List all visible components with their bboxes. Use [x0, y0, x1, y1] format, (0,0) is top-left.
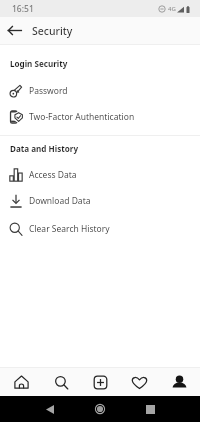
staticText: Access Data: [29, 169, 77, 181]
button[interactable]: Clear Search History: [0, 217, 200, 240]
staticText: 16:51: [12, 3, 34, 15]
staticText: Security: [32, 24, 73, 38]
button[interactable]: Create: [82, 368, 118, 396]
staticText: Clear Search History: [29, 223, 110, 235]
button[interactable]: Home: [3, 368, 39, 396]
button[interactable]: Back: [39, 398, 61, 420]
button[interactable]: Download Data: [0, 189, 200, 212]
staticText: Login Security: [10, 58, 68, 69]
button[interactable]: Profile: [161, 368, 197, 396]
staticText: Password: [29, 85, 68, 97]
button[interactable]: Recents: [139, 398, 161, 420]
button[interactable]: Back: [0, 17, 29, 44]
staticText: Two-Factor Authentication: [29, 111, 135, 123]
button[interactable]: Home: [89, 398, 111, 420]
staticText: Data and History: [10, 143, 79, 154]
staticText: Download Data: [29, 195, 91, 207]
button[interactable]: Search: [43, 368, 79, 396]
button[interactable]: Two-Factor Authentication: [0, 105, 200, 128]
button[interactable]: Activity: [121, 368, 157, 396]
button[interactable]: Access Data: [0, 163, 200, 186]
button[interactable]: Password: [0, 79, 200, 102]
staticText: 4G: [168, 5, 176, 13]
